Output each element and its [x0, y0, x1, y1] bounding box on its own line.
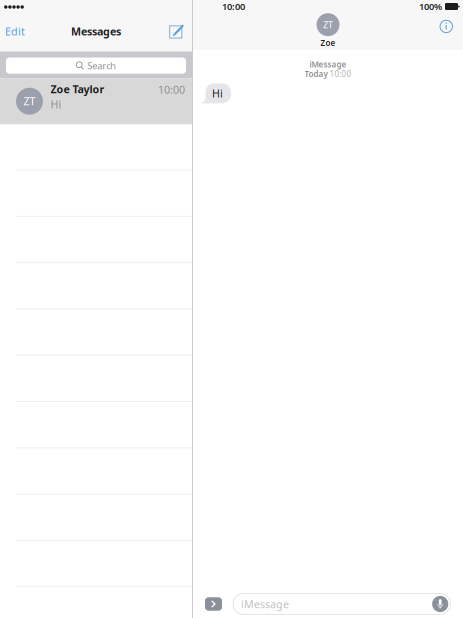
staticText: 10:00: [158, 83, 185, 97]
button[interactable]: Details: [434, 15, 458, 38]
button[interactable]: Edit: [0, 21, 30, 45]
staticText: ZT: [23, 94, 35, 108]
staticText: Hi: [50, 97, 61, 111]
staticText: 100%: [419, 0, 442, 13]
button[interactable]: Record audio: [432, 596, 448, 612]
staticText: 10:00: [329, 69, 351, 79]
staticText: 10:00: [222, 0, 245, 13]
staticText: iMessage: [309, 59, 346, 70]
button[interactable]: Compose: [167, 20, 190, 45]
staticText: Edit: [5, 24, 25, 38]
staticText: Messages: [71, 24, 121, 38]
staticText: ZT: [323, 18, 333, 31]
staticText: Zoe Taylor: [50, 82, 104, 96]
staticText: Zoe: [320, 38, 335, 48]
staticText: Search: [87, 59, 116, 72]
button[interactable]: Apps: [205, 597, 222, 611]
staticText: Hi: [212, 86, 223, 100]
staticText: Today: [304, 69, 327, 79]
staticText: iMessage: [241, 597, 289, 611]
button[interactable]: ZT: [0, 78, 192, 124]
